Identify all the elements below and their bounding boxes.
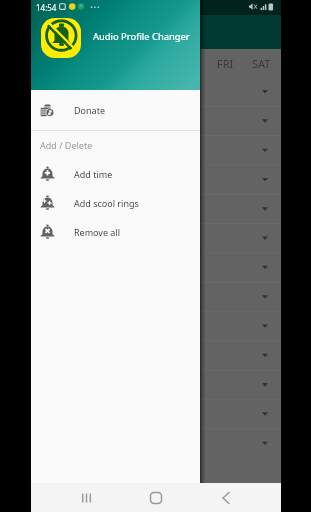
button[interactable]: Add scool rings bbox=[31, 188, 200, 217]
staticText: Add time bbox=[74, 168, 113, 180]
staticText: Remove all bbox=[74, 226, 121, 238]
staticText: FRI bbox=[217, 56, 234, 71]
button[interactable]: Remove all bbox=[31, 217, 200, 246]
staticText: 14:54 bbox=[36, 2, 57, 13]
button[interactable]: Add time bbox=[31, 159, 200, 188]
staticText: Audio Profile Changer bbox=[93, 30, 190, 43]
staticText: SAT bbox=[252, 56, 271, 71]
staticText: Add scool rings bbox=[74, 197, 139, 209]
button[interactable]: Donate bbox=[31, 90, 200, 130]
staticText: Donate bbox=[74, 104, 105, 116]
staticText: Add / Delete bbox=[40, 139, 93, 151]
